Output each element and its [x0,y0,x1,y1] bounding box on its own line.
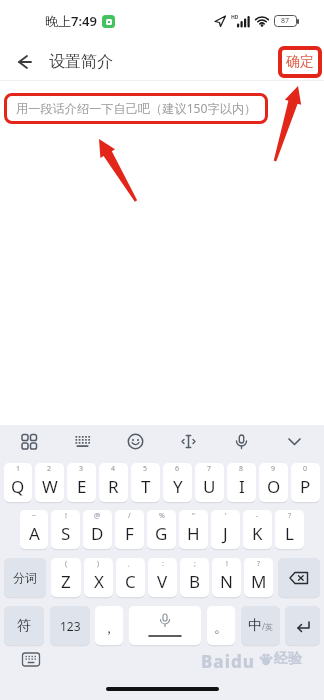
staticText: C [125,570,136,593]
button[interactable]: @ [83,510,112,549]
button[interactable]: 2 [35,463,64,502]
button[interactable] [20,432,39,451]
staticText: 123 [60,618,81,634]
button[interactable] [278,558,320,597]
staticText: 3 [79,464,84,474]
button[interactable]: ; [180,558,209,597]
button[interactable]: 123 [50,606,90,645]
button[interactable]: 7 [195,463,224,502]
staticText: J [223,522,228,545]
staticText: 0 [303,464,308,474]
button[interactable]: ~ [20,510,48,549]
button[interactable] [285,432,304,451]
staticText: D [91,522,104,545]
staticText: P [300,475,311,498]
staticText: G [155,522,168,545]
staticText: ! [65,511,67,521]
button[interactable] [232,432,251,451]
staticText: 确定 [286,53,314,71]
button[interactable]: : [148,558,177,597]
button[interactable] [126,432,145,451]
staticText: / [128,511,131,521]
staticText: ~ [32,511,37,521]
button[interactable]: / [115,510,144,549]
staticText: L [285,522,294,545]
button[interactable] [73,432,92,451]
staticText: 分词 [13,570,37,585]
staticText: 。 [214,619,228,637]
staticText: H [187,522,200,545]
staticText: @ [94,511,101,521]
button[interactable] [16,54,32,70]
staticText: % [159,511,165,521]
button[interactable]: 4 [99,463,128,502]
staticText: ; [194,559,196,569]
button[interactable]: 确定 [278,46,322,78]
staticText: 经验 [274,650,302,668]
button[interactable]: % [147,510,176,549]
staticText: Baidu [201,650,256,668]
staticText: ? [257,559,261,569]
staticText: Z [61,570,71,593]
staticText: 6 [175,464,180,474]
staticText: 2 [47,464,52,474]
button[interactable]: 分词 [4,558,46,597]
button[interactable]: " [179,510,208,549]
staticText: N [220,570,233,593]
staticText: 7 [207,464,212,474]
staticText: I [239,475,245,498]
button[interactable]: ( [51,558,81,597]
staticText: 符 [17,617,31,635]
staticText: A [29,522,40,545]
staticText: O [267,475,281,498]
button[interactable]: 、 [116,558,145,597]
staticText: 设置简介 [49,52,113,72]
staticText: 、 [127,559,134,568]
button[interactable]: ' [211,510,240,549]
button[interactable]: 8 [227,463,256,502]
staticText: Q [11,475,25,498]
button[interactable]: ? [244,558,273,597]
button[interactable]: 5 [131,463,160,502]
button[interactable]: ! [51,510,80,549]
button[interactable]: 0 [291,463,320,502]
button[interactable]: ! [212,558,241,597]
staticText: - [256,511,259,521]
button[interactable] [129,606,201,645]
staticText: X [94,570,104,593]
staticText: K [252,522,263,545]
button[interactable]: ) [84,558,113,597]
staticText: 1 [16,464,21,474]
staticText: ( [65,559,68,569]
button[interactable] [22,652,40,667]
button[interactable]: - [243,510,272,549]
staticText: S [61,522,71,545]
staticText: T [141,475,151,498]
button[interactable]: ， [95,606,123,645]
button[interactable]: 1 [4,463,32,502]
staticText: M [251,570,267,593]
button[interactable]: 中/英 [241,606,280,645]
staticText: 晚上7:49 [45,12,97,30]
button[interactable]: 符 [4,606,44,645]
button[interactable]: 用一段话介绍一下自己吧（建议150字以内） [4,93,268,124]
staticText: HD [231,14,239,21]
staticText: ' [225,511,227,521]
staticText: B [189,570,201,593]
staticText: F [125,522,134,545]
staticText: 4 [111,464,116,474]
button[interactable]: 3 [67,463,96,502]
staticText: : [162,559,164,569]
staticText: U [203,475,216,498]
button[interactable]: 。 [207,606,235,645]
staticText: 8 [239,464,244,474]
staticText: ? [288,511,292,521]
staticText: ， [102,620,116,638]
button[interactable] [285,606,320,645]
staticText: 87 [281,16,290,26]
button[interactable]: 6 [163,463,192,502]
button[interactable]: ? [275,510,304,549]
button[interactable]: 9 [259,463,288,502]
staticText: W [42,475,58,498]
button[interactable] [179,432,198,451]
